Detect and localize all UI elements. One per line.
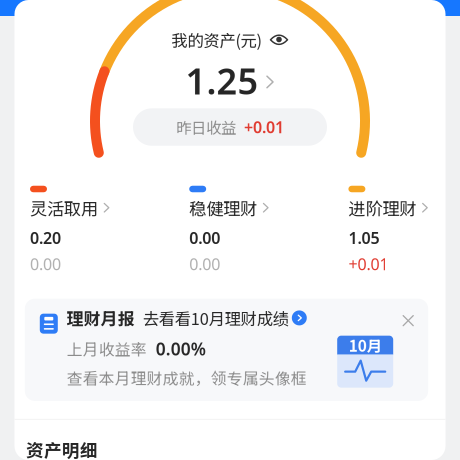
- staticText: 1.25: [185, 57, 258, 104]
- staticText: 上月收益率: [67, 337, 147, 360]
- staticText: 10月: [349, 334, 382, 356]
- staticText: 灵活取用: [30, 195, 98, 220]
- staticText: 我的资产(元): [171, 28, 261, 52]
- staticText: 0.00: [189, 227, 220, 248]
- staticText: 昨日收益: [176, 116, 236, 138]
- button[interactable]: 稳健理财: [189, 186, 269, 275]
- button[interactable]: 灵活取用: [30, 186, 110, 275]
- staticText: 0.20: [30, 227, 61, 248]
- staticText: 1.05: [348, 227, 379, 248]
- button[interactable]: 昨日收益: [133, 108, 327, 146]
- staticText: 进阶理财: [348, 195, 416, 220]
- staticText: 资产明细: [26, 437, 98, 460]
- staticText: 理财月报: [67, 306, 135, 330]
- button[interactable]: 进阶理财: [348, 186, 428, 275]
- staticText: 去看看10月理财成绩: [143, 306, 289, 330]
- staticText: +0.01: [348, 253, 388, 275]
- staticText: 稳健理财: [189, 195, 257, 220]
- button[interactable]: 1.25: [185, 57, 274, 104]
- staticText: 0.00: [189, 253, 220, 275]
- button[interactable]: 我的资产(元): [171, 28, 288, 52]
- staticText: +0.01: [244, 116, 284, 138]
- staticText: 0.00%: [156, 337, 206, 360]
- button[interactable]: 理财月报: [67, 306, 307, 330]
- staticText: 0.00: [30, 253, 61, 275]
- staticText: 查看本月理财成就，领专属头像框: [67, 366, 307, 389]
- button[interactable]: 关闭: [394, 307, 422, 335]
